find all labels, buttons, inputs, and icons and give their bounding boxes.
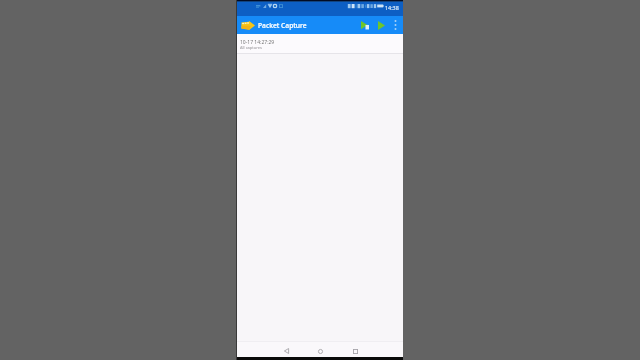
button[interactable]: Back bbox=[276, 341, 296, 357]
staticText: 14:38 bbox=[385, 4, 399, 11]
staticText: 10-17 14:27:29 bbox=[240, 39, 275, 46]
button[interactable]: Recent apps bbox=[345, 341, 365, 357]
staticText: Packet Capture bbox=[258, 21, 307, 30]
staticText: All captures bbox=[240, 45, 262, 50]
button[interactable]: Home bbox=[310, 341, 330, 357]
button[interactable]: Start capture with app bbox=[357, 16, 372, 34]
button[interactable]: 10-17 14:27:29 bbox=[237, 34, 403, 54]
button[interactable]: Start capture bbox=[374, 16, 389, 34]
button[interactable]: App icon bbox=[240, 16, 255, 34]
button[interactable]: More options bbox=[390, 16, 401, 34]
